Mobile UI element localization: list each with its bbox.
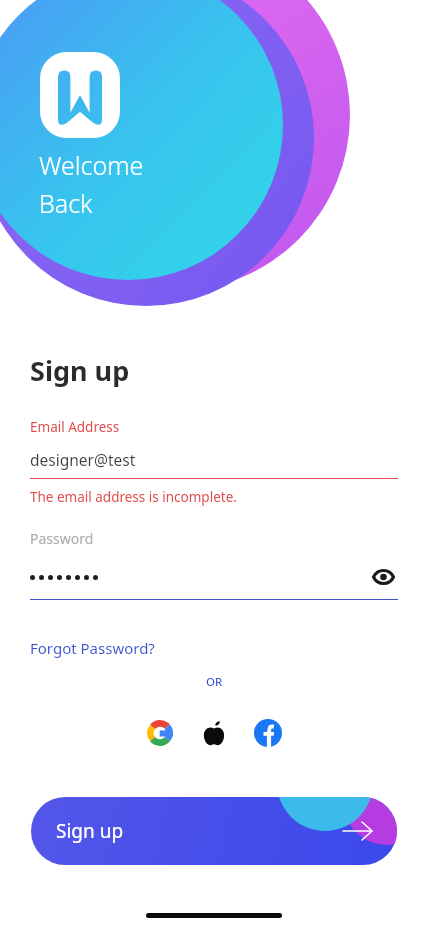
button[interactable]: Forgot Password? [30, 638, 155, 658]
staticText: Sign up [56, 818, 124, 844]
staticText: Forgot Password? [30, 638, 155, 658]
staticText: The email address is incomplete. [30, 488, 237, 506]
staticText: OR [206, 674, 223, 690]
staticText: Back [39, 186, 93, 220]
button[interactable]: Show password [368, 562, 398, 592]
button[interactable]: Sign in with Google [138, 711, 182, 755]
staticText: Password [30, 529, 94, 548]
staticText: Welcome [39, 148, 144, 182]
staticText: Email Address [30, 418, 120, 436]
button[interactable]: Sign in with Facebook [246, 711, 290, 755]
button[interactable]: Email Address [0, 418, 428, 506]
staticText: Sign up [30, 352, 130, 389]
staticText: designer@test [30, 449, 136, 470]
button[interactable]: Sign in with Apple [192, 711, 236, 755]
button[interactable]: Sign up [31, 797, 397, 865]
button[interactable]: Password [0, 529, 428, 600]
